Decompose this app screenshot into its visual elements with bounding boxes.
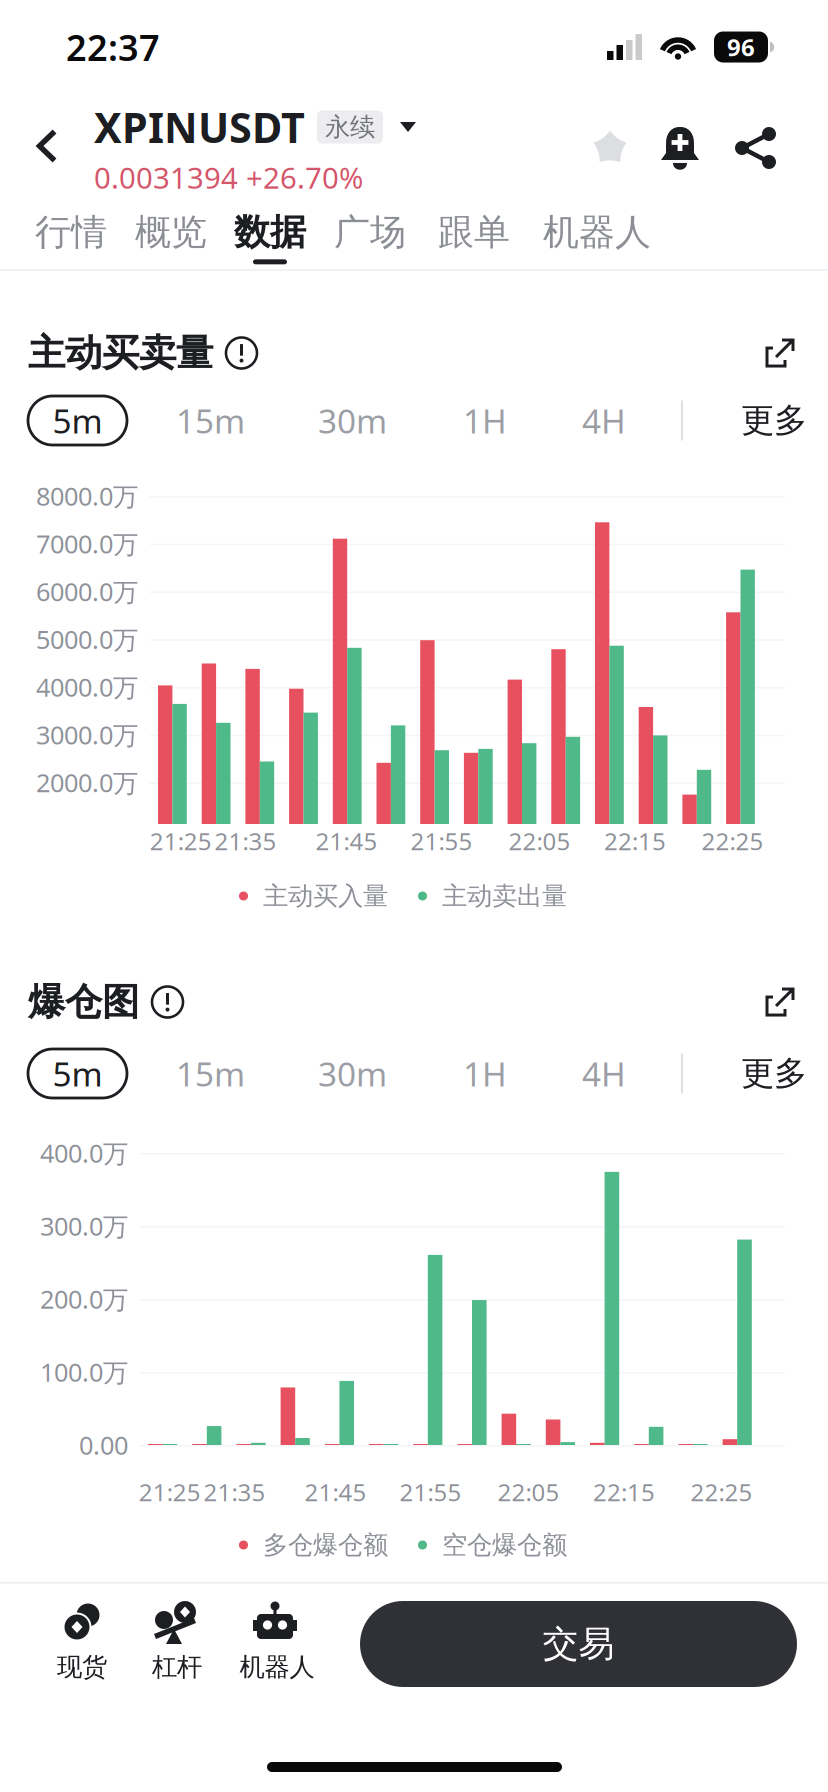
button[interactable]: Favorite [592, 130, 628, 165]
staticText: 现货 [57, 1651, 107, 1682]
staticText: 22:37 [66, 23, 160, 71]
staticText: 200.0万 [40, 1282, 128, 1316]
button[interactable]: 数据 [234, 210, 306, 264]
staticText: 主动买卖量 [28, 330, 213, 376]
staticText: 0.0031394 +26.70% [94, 158, 363, 197]
button[interactable]: Switch market [392, 110, 424, 143]
button[interactable]: 5m [28, 396, 127, 445]
staticText: 4H [582, 398, 626, 443]
button[interactable]: Expand chart [762, 982, 800, 1022]
staticText: 主动买入量 [263, 880, 388, 911]
staticText: 交易 [542, 1622, 614, 1666]
staticText: 5m [52, 1051, 102, 1096]
staticText: 0.00 [79, 1428, 128, 1462]
button[interactable]: Share [734, 126, 778, 170]
staticText: 22:25 [701, 825, 763, 857]
staticText: 多仓爆仓额 [263, 1529, 388, 1560]
staticText: 3000.0万 [36, 718, 138, 751]
staticText: 8000.0万 [36, 479, 138, 513]
staticText: 21:55 [400, 1476, 462, 1508]
staticText: 22:25 [690, 1476, 752, 1508]
staticText: 30m [318, 398, 387, 443]
staticText: 机器人 [239, 1651, 314, 1682]
staticText: 2000.0万 [36, 766, 138, 799]
button[interactable]: 杠杆 [131, 1582, 223, 1682]
staticText: 5000.0万 [36, 622, 138, 656]
staticText: 21:25 [139, 1476, 201, 1508]
staticText: 300.0万 [40, 1209, 128, 1243]
staticText: 6000.0万 [36, 575, 138, 608]
staticText: 21:35 [204, 1476, 266, 1508]
button[interactable]: 30m [318, 1051, 387, 1096]
staticText: 4H [582, 1051, 626, 1096]
button[interactable]: 广场 [334, 210, 406, 264]
staticText: XPINUSDT [94, 100, 305, 154]
staticText: 空仓爆仓额 [442, 1529, 567, 1560]
button[interactable]: 15m [176, 398, 245, 443]
staticText: 21:45 [315, 825, 377, 857]
button[interactable]: 行情 [35, 210, 107, 264]
staticText: 22:15 [593, 1476, 655, 1508]
button[interactable]: 机器人 [231, 1582, 323, 1682]
button[interactable]: Price alert [659, 123, 701, 173]
button[interactable]: 交易 [360, 1601, 797, 1687]
staticText: 更多 [741, 1053, 807, 1094]
staticText: 15m [176, 398, 245, 443]
button[interactable]: 1H [463, 398, 507, 443]
staticText: 永续 [325, 111, 375, 142]
staticText: 21:35 [215, 825, 277, 857]
staticText: 7000.0万 [36, 527, 138, 560]
button[interactable]: 更多 [741, 1053, 807, 1094]
staticText: 爆仓图 [28, 979, 139, 1025]
staticText: 22:05 [508, 825, 570, 857]
staticText: 概览 [135, 210, 207, 254]
button[interactable]: 4H [582, 398, 626, 443]
button[interactable]: Back [16, 115, 78, 177]
staticText: 主动卖出量 [442, 880, 567, 911]
staticText: 1H [463, 398, 507, 443]
button[interactable]: 1H [463, 1051, 507, 1096]
button[interactable]: 概览 [135, 210, 207, 264]
button[interactable]: 15m [176, 1051, 245, 1096]
staticText: 22:05 [497, 1476, 559, 1508]
staticText: 400.0万 [40, 1136, 128, 1170]
staticText: 行情 [35, 210, 107, 254]
button[interactable]: 5m [28, 1049, 127, 1098]
staticText: 5m [52, 398, 102, 443]
staticText: 15m [176, 1051, 245, 1096]
staticText: 1H [463, 1051, 507, 1096]
button[interactable]: 跟单 [438, 210, 510, 264]
staticText: 21:55 [411, 825, 473, 857]
staticText: 跟单 [438, 210, 510, 254]
staticText: 22:15 [604, 825, 666, 857]
button[interactable]: 现货 [36, 1582, 128, 1682]
button[interactable]: 4H [582, 1051, 626, 1096]
button[interactable]: Expand chart [762, 333, 800, 373]
staticText: 广场 [334, 210, 406, 254]
button[interactable]: 更多 [741, 400, 807, 441]
button[interactable]: 机器人 [543, 210, 651, 264]
staticText: 21:45 [304, 1476, 366, 1508]
staticText: 更多 [741, 400, 807, 441]
staticText: 30m [318, 1051, 387, 1096]
staticText: 100.0万 [40, 1355, 128, 1389]
staticText: 杠杆 [152, 1651, 202, 1682]
staticText: 数据 [234, 210, 306, 254]
staticText: 96 [727, 31, 755, 63]
staticText: 4000.0万 [36, 670, 138, 704]
button[interactable]: 30m [318, 398, 387, 443]
staticText: 机器人 [543, 210, 651, 254]
staticText: 21:25 [150, 825, 212, 857]
